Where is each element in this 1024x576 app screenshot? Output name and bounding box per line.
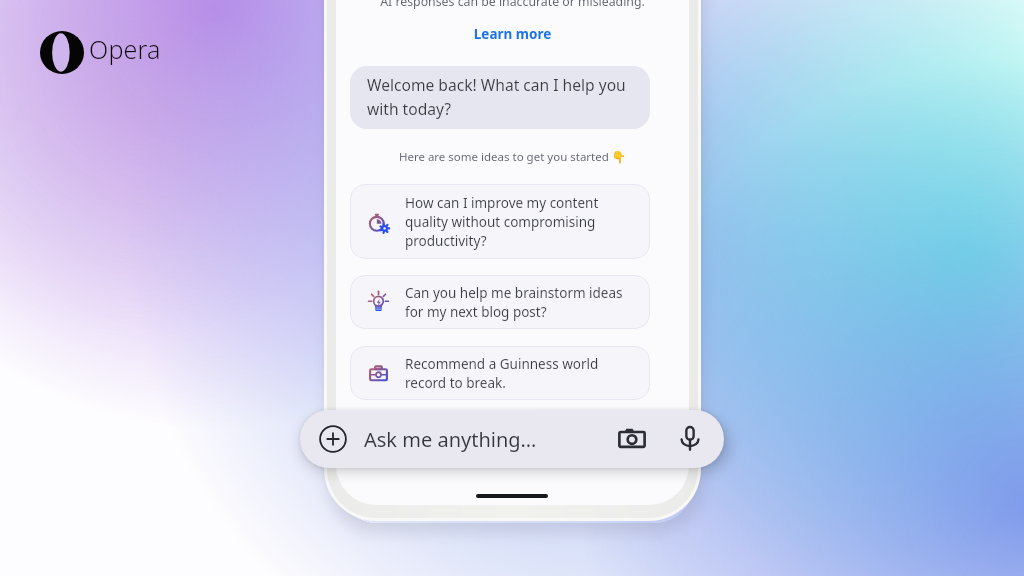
staticText: Opera [89, 32, 161, 66]
staticText: Ask me anything… [364, 426, 537, 453]
staticText: Here are some ideas to get you started 👇 [336, 149, 689, 165]
button[interactable]: Voice input [674, 423, 706, 455]
staticText: AI responses can be inaccurate or mislea… [336, 0, 689, 10]
button[interactable]: Add attachment [300, 410, 724, 468]
button[interactable]: Learn more [336, 25, 689, 43]
button[interactable]: Recommend a Guinness world record to bre… [350, 346, 650, 400]
button[interactable]: Camera [616, 423, 648, 455]
button[interactable]: How can I improve my content quality wit… [350, 184, 650, 259]
staticText: Recommend a Guinness world record to bre… [405, 355, 627, 392]
button[interactable]: Add attachment [318, 424, 348, 454]
staticText: Can you help me brainstorm ideas for my … [405, 284, 627, 321]
button[interactable]: Can you help me brainstorm ideas for my … [350, 275, 650, 329]
staticText: Welcome back! What can I help you with t… [367, 74, 643, 119]
staticText: How can I improve my content quality wit… [405, 194, 627, 250]
